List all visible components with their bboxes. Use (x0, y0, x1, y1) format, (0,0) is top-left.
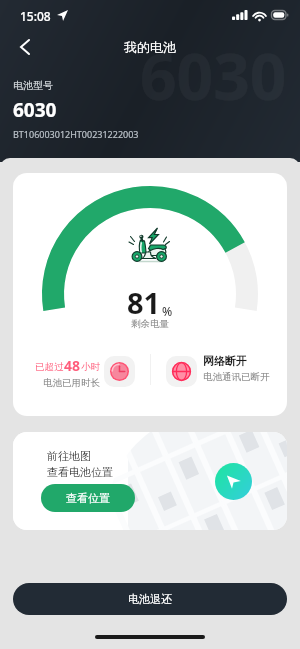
staticText: 电池已用时长 (43, 377, 100, 389)
staticText: % (162, 303, 173, 319)
staticText: 前往地图 (47, 449, 91, 463)
button[interactable] (104, 356, 135, 387)
button[interactable]: 电池退还 (13, 583, 287, 615)
staticText: 小时 (81, 361, 100, 373)
staticText: 我的电池 (124, 39, 176, 55)
button[interactable] (166, 356, 197, 387)
button[interactable]: 已超过 (30, 354, 100, 389)
staticText: 网络断开 (203, 354, 247, 368)
staticText: 6030 (13, 97, 57, 123)
staticText: 6030 (140, 32, 287, 119)
button[interactable]: 查看位置 (41, 484, 135, 512)
staticText: 查看电池位置 (47, 465, 113, 479)
staticText: BT106003012HT00231222003 (13, 128, 139, 140)
staticText: 剩余电量 (131, 318, 169, 330)
staticText: 81 (127, 283, 161, 322)
staticText: 已超过 (35, 361, 64, 373)
staticText: 电池型号 (13, 79, 53, 92)
button[interactable]: Back (8, 30, 42, 64)
button[interactable]: Navigate (215, 463, 252, 500)
staticText: 查看位置 (66, 491, 110, 505)
staticText: 15:08 (20, 8, 51, 24)
staticText: 电池通讯已断开 (203, 371, 270, 383)
button[interactable]: 网络断开 (203, 354, 270, 383)
staticText: 电池退还 (128, 592, 172, 606)
staticText: 48 (64, 356, 81, 375)
